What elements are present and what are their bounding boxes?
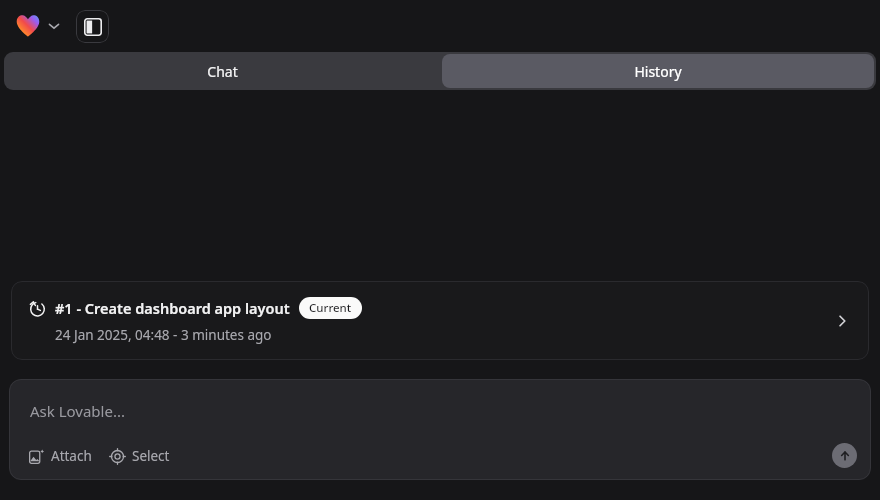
- button[interactable]: Select: [108, 444, 172, 468]
- staticText: Ask Lovable...: [30, 401, 125, 421]
- staticText: Attach: [51, 447, 92, 465]
- staticText: 24 Jan 2025, 04:48 - 3 minutes ago: [55, 326, 272, 344]
- staticText: Current: [309, 300, 352, 316]
- button[interactable]: Ask Lovable...: [9, 379, 871, 443]
- staticText: #1 - Create dashboard app layout: [55, 298, 290, 318]
- staticText: History: [634, 62, 682, 81]
- button[interactable]: Lovable menu: [14, 10, 62, 42]
- button[interactable]: Send: [832, 443, 857, 468]
- staticText: Select: [132, 447, 170, 465]
- button[interactable]: Toggle sidebar: [76, 10, 109, 43]
- button[interactable]: Attach: [27, 444, 94, 468]
- button[interactable]: Open: [829, 308, 855, 334]
- button[interactable]: #1 - Create dashboard app layout: [11, 281, 869, 360]
- button[interactable]: History: [442, 54, 874, 88]
- staticText: Chat: [207, 62, 238, 81]
- button[interactable]: Chat: [4, 52, 440, 90]
